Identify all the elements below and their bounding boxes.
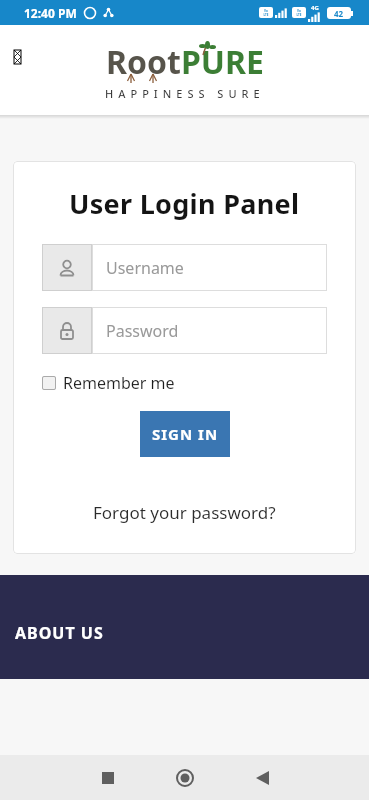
staticText: Password xyxy=(106,320,179,342)
button[interactable]: Password xyxy=(92,307,327,354)
staticText: 4G xyxy=(311,4,319,12)
staticText: ABOUT US xyxy=(15,622,104,644)
button[interactable]: Forgot your password? xyxy=(93,501,276,524)
staticText: Vo LTE xyxy=(296,9,302,17)
button[interactable] xyxy=(173,766,197,790)
staticText: User Login Panel xyxy=(69,185,300,222)
staticText: 42 xyxy=(334,8,344,19)
button[interactable] xyxy=(96,766,120,790)
staticText: HAPPINESS SURE xyxy=(105,86,265,101)
staticText: SIGN IN xyxy=(152,424,219,444)
staticText: Vo LTE xyxy=(263,9,269,17)
button[interactable]: Remember me xyxy=(42,372,356,394)
button[interactable] xyxy=(250,766,274,790)
staticText: Remember me xyxy=(63,372,175,394)
button[interactable]: Username xyxy=(92,244,327,291)
staticText: 12:40 PM xyxy=(24,5,77,21)
staticText: Username xyxy=(106,257,184,279)
button[interactable]: SIGN IN xyxy=(140,411,230,457)
staticText: Root xyxy=(106,40,181,84)
staticText: PURE xyxy=(181,40,264,84)
